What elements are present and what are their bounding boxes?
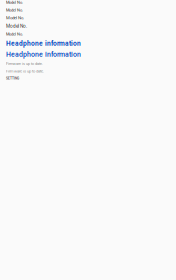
staticText: Model No. — [6, 0, 23, 5]
staticText: Headphone information — [6, 50, 81, 58]
staticText: Headphone information — [6, 39, 81, 47]
staticText: Firmware is up to date. — [6, 69, 44, 73]
staticText: Model No. — [6, 15, 24, 20]
staticText: Model No. — [6, 23, 27, 29]
staticText: Model No. — [6, 8, 23, 12]
staticText: Firmware is up to date. — [6, 61, 43, 66]
staticText: SETTING — [6, 76, 19, 80]
staticText: Model No. — [6, 32, 23, 36]
